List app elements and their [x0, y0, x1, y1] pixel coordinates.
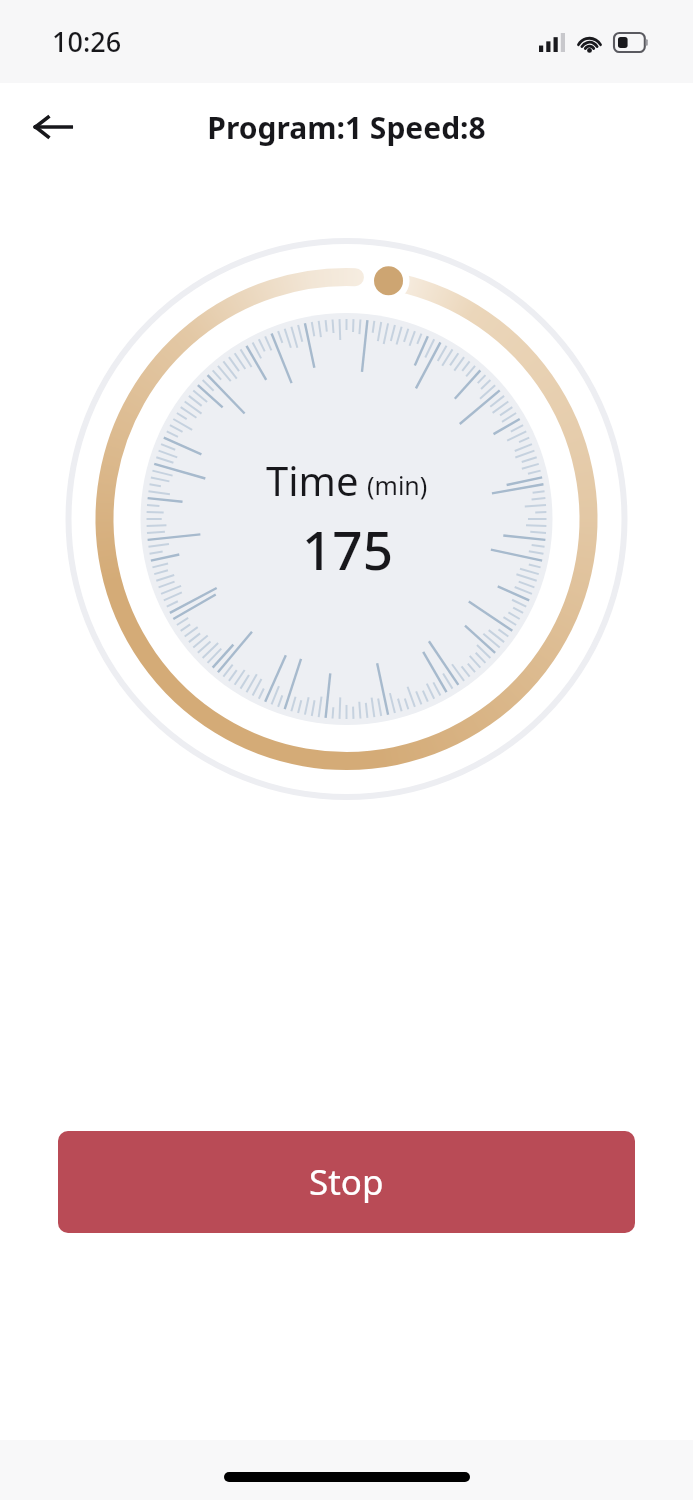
staticText: (min) — [367, 468, 428, 502]
button[interactable]: Back — [22, 96, 84, 158]
staticText: Program:1 Speed:8 — [207, 107, 486, 148]
staticText: 175 — [302, 513, 393, 585]
staticText: Stop — [309, 1158, 384, 1206]
staticText: 10:26 — [52, 23, 122, 60]
button[interactable]: Stop — [58, 1131, 635, 1233]
staticText: Time — [266, 453, 359, 507]
